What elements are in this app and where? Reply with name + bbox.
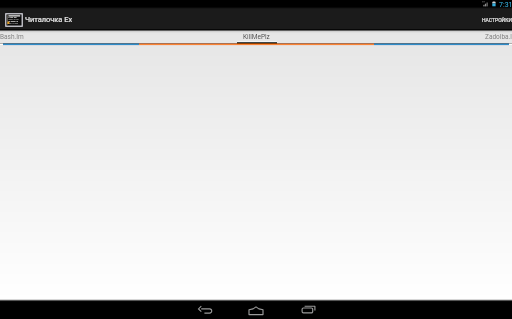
button[interactable]: KillMePlz: [139, 30, 374, 43]
button[interactable]: Recent apps: [294, 299, 324, 318]
button[interactable]: НАСТРОЙКИ: [476, 8, 512, 29]
button[interactable]: Back: [190, 300, 220, 319]
staticText: Bash.Im: [0, 33, 24, 41]
staticText: 7:31: [499, 1, 512, 9]
staticText: НАСТРОЙКИ: [482, 17, 512, 23]
button[interactable]: Читалочка Ex: [0, 8, 78, 29]
staticText: Читалочка Ex: [25, 15, 73, 24]
button[interactable]: Zadolba.li: [374, 30, 512, 43]
button[interactable]: Home: [241, 301, 271, 319]
button[interactable]: Bash.Im: [0, 30, 139, 43]
staticText: KillMePlz: [243, 33, 270, 41]
staticText: Zadolba.li: [485, 33, 512, 41]
